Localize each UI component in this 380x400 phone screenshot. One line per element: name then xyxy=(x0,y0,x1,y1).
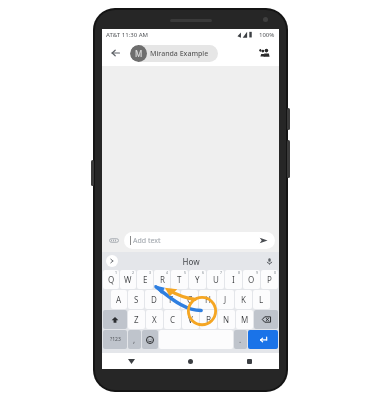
staticText: I xyxy=(232,274,235,285)
button[interactable]: R xyxy=(154,270,170,289)
button[interactable]: Attach media xyxy=(106,232,122,248)
button[interactable]: K xyxy=(235,290,252,309)
button[interactable]: O xyxy=(243,270,260,289)
staticText: U xyxy=(213,274,219,285)
staticText: F xyxy=(169,294,174,305)
staticText: 7 xyxy=(220,270,223,275)
button[interactable]: I xyxy=(225,270,242,289)
button[interactable]: T xyxy=(171,270,188,289)
staticText: ?123 xyxy=(110,336,121,343)
staticText: , xyxy=(133,334,136,345)
staticText: 100% xyxy=(259,31,275,39)
button[interactable]: D xyxy=(145,290,162,309)
staticText: L xyxy=(259,294,264,305)
staticText: R xyxy=(160,274,165,285)
button[interactable]: Add people xyxy=(257,45,273,61)
staticText: J xyxy=(224,294,227,305)
staticText: B xyxy=(206,314,212,325)
button[interactable]: Z xyxy=(128,310,145,329)
button[interactable]: . xyxy=(234,330,247,349)
staticText: H xyxy=(205,294,211,305)
staticText: D xyxy=(151,294,157,305)
button[interactable]: Expand xyxy=(106,255,118,267)
staticText: K xyxy=(241,294,246,305)
button[interactable]: Back xyxy=(108,45,124,61)
button[interactable]: B xyxy=(200,310,217,329)
button[interactable]: Home xyxy=(161,353,220,369)
staticText: S xyxy=(134,294,139,305)
staticText: G xyxy=(187,294,193,305)
staticText: Add text xyxy=(133,236,161,246)
button[interactable]: Y xyxy=(189,270,206,289)
staticText: W xyxy=(124,274,132,285)
button[interactable]: ?123 xyxy=(103,330,127,349)
button[interactable]: Voice input xyxy=(263,255,275,267)
button[interactable]: E xyxy=(137,270,153,289)
staticText: 5 xyxy=(184,270,187,275)
staticText: A xyxy=(116,294,122,305)
button[interactable]: Add text xyxy=(124,232,275,249)
staticText: 0 xyxy=(274,270,277,275)
staticText: Miranda Example xyxy=(150,49,209,59)
staticText: T xyxy=(177,274,182,285)
staticText: 6 xyxy=(202,270,205,275)
staticText: E xyxy=(143,274,148,285)
button[interactable]: S xyxy=(128,290,144,309)
button[interactable]: U xyxy=(207,270,224,289)
staticText: 3 xyxy=(149,270,152,275)
button[interactable]: G xyxy=(181,290,198,309)
staticText: AT&T 11:30 AM xyxy=(106,31,149,39)
button[interactable]: Backspace xyxy=(254,310,278,329)
button[interactable]: How xyxy=(118,252,263,270)
staticText: P xyxy=(267,274,272,285)
button[interactable]: H xyxy=(199,290,216,309)
staticText: X xyxy=(152,314,157,325)
button[interactable]: P xyxy=(261,270,278,289)
button[interactable]: L xyxy=(253,290,270,309)
button[interactable]: M xyxy=(130,45,218,62)
button[interactable]: Shift xyxy=(103,310,127,329)
staticText: 2 xyxy=(132,270,135,275)
button[interactable]: Enter xyxy=(248,330,278,349)
staticText: 9 xyxy=(256,270,259,275)
button[interactable]: Recents xyxy=(220,353,279,369)
staticText: 1 xyxy=(115,270,118,275)
button[interactable]: V xyxy=(182,310,199,329)
staticText: C xyxy=(170,314,176,325)
button[interactable]: X xyxy=(146,310,163,329)
staticText: Q xyxy=(108,274,115,285)
staticText: How xyxy=(182,256,200,267)
staticText: M xyxy=(135,48,143,59)
button[interactable]: M xyxy=(236,310,253,329)
button[interactable]: J xyxy=(217,290,234,309)
button[interactable]: Back xyxy=(102,353,161,369)
staticText: Y xyxy=(195,274,200,285)
button[interactable]: C xyxy=(164,310,181,329)
staticText: O xyxy=(248,274,255,285)
staticText: M xyxy=(241,314,249,325)
staticText: Z xyxy=(134,314,139,325)
staticText: . xyxy=(239,334,242,345)
staticText: V xyxy=(188,314,193,325)
button[interactable]: W xyxy=(120,270,136,289)
staticText: 8 xyxy=(238,270,241,275)
button[interactable]: Q xyxy=(103,270,119,289)
button[interactable]: A xyxy=(111,290,127,309)
button[interactable]: N xyxy=(218,310,235,329)
staticText: N xyxy=(223,314,230,325)
button[interactable]: Emoji xyxy=(142,330,158,349)
staticText: 4 xyxy=(166,270,169,275)
button[interactable]: Send xyxy=(258,235,269,246)
button[interactable]: F xyxy=(163,290,180,309)
button[interactable]: , xyxy=(128,330,141,349)
